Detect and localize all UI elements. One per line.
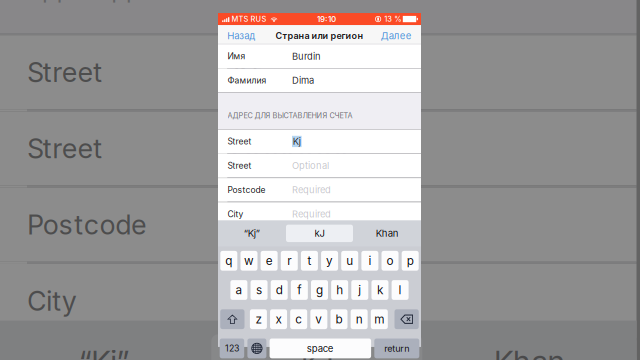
button[interactable]: space: [270, 338, 371, 358]
staticText: k: [377, 283, 383, 297]
staticText: m: [374, 312, 384, 326]
staticText: “Kj”: [244, 227, 260, 239]
button[interactable]: Delete: [394, 309, 419, 329]
staticText: Dima: [292, 75, 314, 86]
button[interactable]: k: [371, 280, 388, 300]
staticText: x: [276, 312, 282, 326]
button[interactable]: Фамилия: [218, 69, 421, 92]
staticText: Postcode: [227, 185, 265, 195]
staticText: l: [399, 283, 402, 297]
button[interactable]: e: [261, 251, 278, 271]
button[interactable]: Имя: [218, 44, 421, 68]
staticText: s: [256, 283, 262, 297]
button[interactable]: h: [331, 280, 348, 300]
staticText: y: [326, 254, 333, 268]
staticText: e: [266, 254, 273, 268]
staticText: АДРЕС ДЛЯ ВЫСТАВЛЕНИЯ СЧЕТА: [227, 111, 352, 120]
staticText: u: [346, 254, 353, 268]
button[interactable]: t: [301, 251, 318, 271]
staticText: r: [287, 254, 291, 268]
button[interactable]: kJ: [286, 220, 353, 246]
button[interactable]: n: [351, 309, 368, 329]
button[interactable]: f: [291, 280, 308, 300]
staticText: z: [255, 312, 261, 326]
staticText: 13 %: [384, 14, 401, 23]
button[interactable]: z: [250, 309, 267, 329]
staticText: p: [407, 254, 414, 268]
staticText: a: [235, 283, 242, 297]
staticText: Required: [292, 208, 331, 220]
button[interactable]: p: [402, 251, 419, 271]
button[interactable]: Khan: [353, 220, 421, 246]
staticText: space: [307, 343, 334, 354]
button[interactable]: w: [240, 251, 257, 271]
staticText: Далее: [381, 30, 412, 41]
button[interactable]: Shift: [220, 309, 244, 329]
staticText: Назад: [227, 30, 255, 41]
button[interactable]: r: [281, 251, 298, 271]
button[interactable]: Switch keyboard: [247, 338, 266, 358]
button[interactable]: q: [220, 251, 237, 271]
staticText: 19:10: [317, 14, 336, 24]
staticText: o: [386, 254, 393, 268]
staticText: c: [295, 312, 302, 326]
button[interactable]: Street: [218, 130, 421, 153]
staticText: Страна или регион: [275, 30, 363, 41]
staticText: Khan: [376, 227, 399, 239]
staticText: f: [297, 283, 301, 297]
staticText: Фамилия: [227, 75, 266, 86]
button[interactable]: d: [271, 280, 288, 300]
button[interactable]: x: [270, 309, 287, 329]
staticText: MTS RUS: [232, 14, 267, 23]
staticText: d: [276, 283, 283, 297]
staticText: q: [225, 254, 232, 268]
staticText: h: [336, 283, 343, 297]
button[interactable]: m: [371, 309, 388, 329]
staticText: Optional: [292, 160, 329, 171]
button[interactable]: “Kj”: [218, 220, 286, 246]
button[interactable]: Postcode: [218, 178, 421, 202]
staticText: j: [358, 283, 361, 297]
button[interactable]: g: [311, 280, 328, 300]
staticText: t: [307, 254, 311, 268]
staticText: kJ: [314, 227, 324, 239]
button[interactable]: v: [310, 309, 327, 329]
button[interactable]: c: [290, 309, 307, 329]
staticText: City: [227, 209, 243, 219]
button[interactable]: u: [341, 251, 358, 271]
staticText: Kj: [293, 136, 301, 147]
button[interactable]: s: [250, 280, 267, 300]
staticText: return: [384, 343, 409, 354]
button[interactable]: Далее: [377, 25, 421, 46]
button[interactable]: Street: [218, 154, 421, 177]
staticText: Required: [292, 184, 331, 195]
staticText: n: [356, 312, 363, 326]
staticText: Street: [227, 136, 251, 147]
button[interactable]: return: [374, 338, 419, 358]
button[interactable]: j: [351, 280, 368, 300]
button[interactable]: a: [230, 280, 247, 300]
button[interactable]: b: [330, 309, 347, 329]
button[interactable]: o: [381, 251, 398, 271]
button[interactable]: City: [218, 202, 421, 226]
staticText: w: [244, 254, 254, 268]
staticText: b: [335, 312, 342, 326]
staticText: v: [315, 312, 322, 326]
staticText: g: [316, 283, 323, 297]
button[interactable]: y: [321, 251, 338, 271]
button[interactable]: Назад: [218, 25, 259, 46]
button[interactable]: l: [392, 280, 409, 300]
staticText: 123: [225, 343, 239, 354]
button[interactable]: i: [361, 251, 378, 271]
staticText: Имя: [227, 51, 245, 61]
button[interactable]: 123: [220, 338, 244, 358]
staticText: i: [368, 254, 371, 268]
staticText: Burdin: [292, 51, 321, 62]
staticText: Street: [227, 160, 251, 171]
